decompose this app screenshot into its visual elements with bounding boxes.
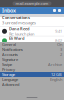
staticText: 2 bbox=[60, 52, 62, 57]
staticText: Signature bbox=[2, 57, 18, 62]
staticText: Dana Reed bbox=[9, 26, 29, 31]
staticText: Language bbox=[2, 77, 18, 82]
staticText: mail.example.com bbox=[15, 1, 48, 6]
staticText: On bbox=[57, 42, 62, 47]
staticText: English bbox=[50, 77, 62, 82]
staticText: Design review bbox=[9, 41, 34, 46]
button[interactable]: Signature bbox=[0, 57, 64, 62]
staticText: 9:41 bbox=[55, 29, 62, 34]
staticText: Swipe bbox=[2, 62, 12, 67]
staticText: Conversations bbox=[2, 15, 30, 20]
staticText: 3 unread messages bbox=[2, 20, 36, 25]
button[interactable]: General bbox=[0, 42, 64, 47]
button[interactable]: mail.example.com bbox=[12, 1, 51, 5]
button[interactable]: Language bbox=[0, 77, 64, 82]
staticText: Re: launch plan bbox=[9, 31, 34, 37]
button[interactable]: Compose bbox=[57, 8, 62, 13]
button[interactable]: Swipe bbox=[0, 62, 64, 67]
staticText: 8:02 bbox=[55, 38, 62, 43]
button[interactable]: Search bbox=[52, 8, 57, 13]
staticText: 3 bbox=[60, 47, 62, 52]
button[interactable]: Notifications bbox=[0, 47, 64, 52]
staticText: Archive bbox=[48, 62, 62, 67]
staticText: Privacy bbox=[2, 67, 15, 72]
staticText: Eli Ward bbox=[9, 35, 24, 41]
button[interactable]: Privacy bbox=[0, 67, 64, 72]
staticText: General bbox=[2, 42, 16, 47]
button[interactable]: Eli Ward bbox=[0, 36, 64, 45]
staticText: 12 GB bbox=[51, 72, 62, 77]
staticText: Accounts bbox=[2, 52, 18, 57]
button[interactable]: Advanced bbox=[0, 82, 64, 87]
button[interactable]: Dana Reed bbox=[0, 27, 64, 36]
button[interactable]: Accounts bbox=[0, 52, 64, 57]
staticText: Inbox bbox=[2, 7, 16, 14]
staticText: Storage bbox=[2, 72, 15, 77]
button[interactable]: Storage bbox=[0, 72, 64, 77]
staticText: Advanced bbox=[2, 82, 19, 87]
staticText: Notifications bbox=[2, 47, 23, 52]
